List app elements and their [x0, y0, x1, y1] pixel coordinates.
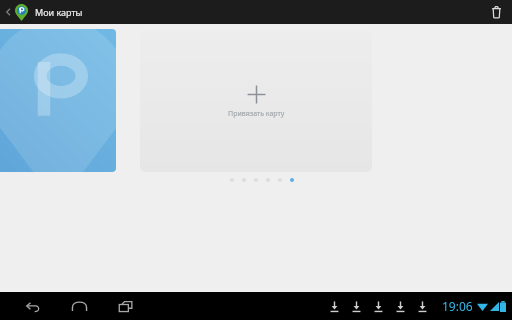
button[interactable]: Home [64, 292, 94, 320]
staticText: Мои карты [35, 6, 83, 18]
staticText: 19:06 [442, 298, 473, 314]
button[interactable]: Back [2, 0, 15, 24]
button[interactable]: Recent apps [110, 292, 140, 320]
button[interactable]: Привязать карту [140, 31, 372, 172]
staticText: Привязать карту [228, 109, 285, 119]
button[interactable]: Parking card [0, 29, 116, 172]
button[interactable]: Delete [483, 0, 509, 24]
button[interactable]: Back [18, 292, 48, 320]
